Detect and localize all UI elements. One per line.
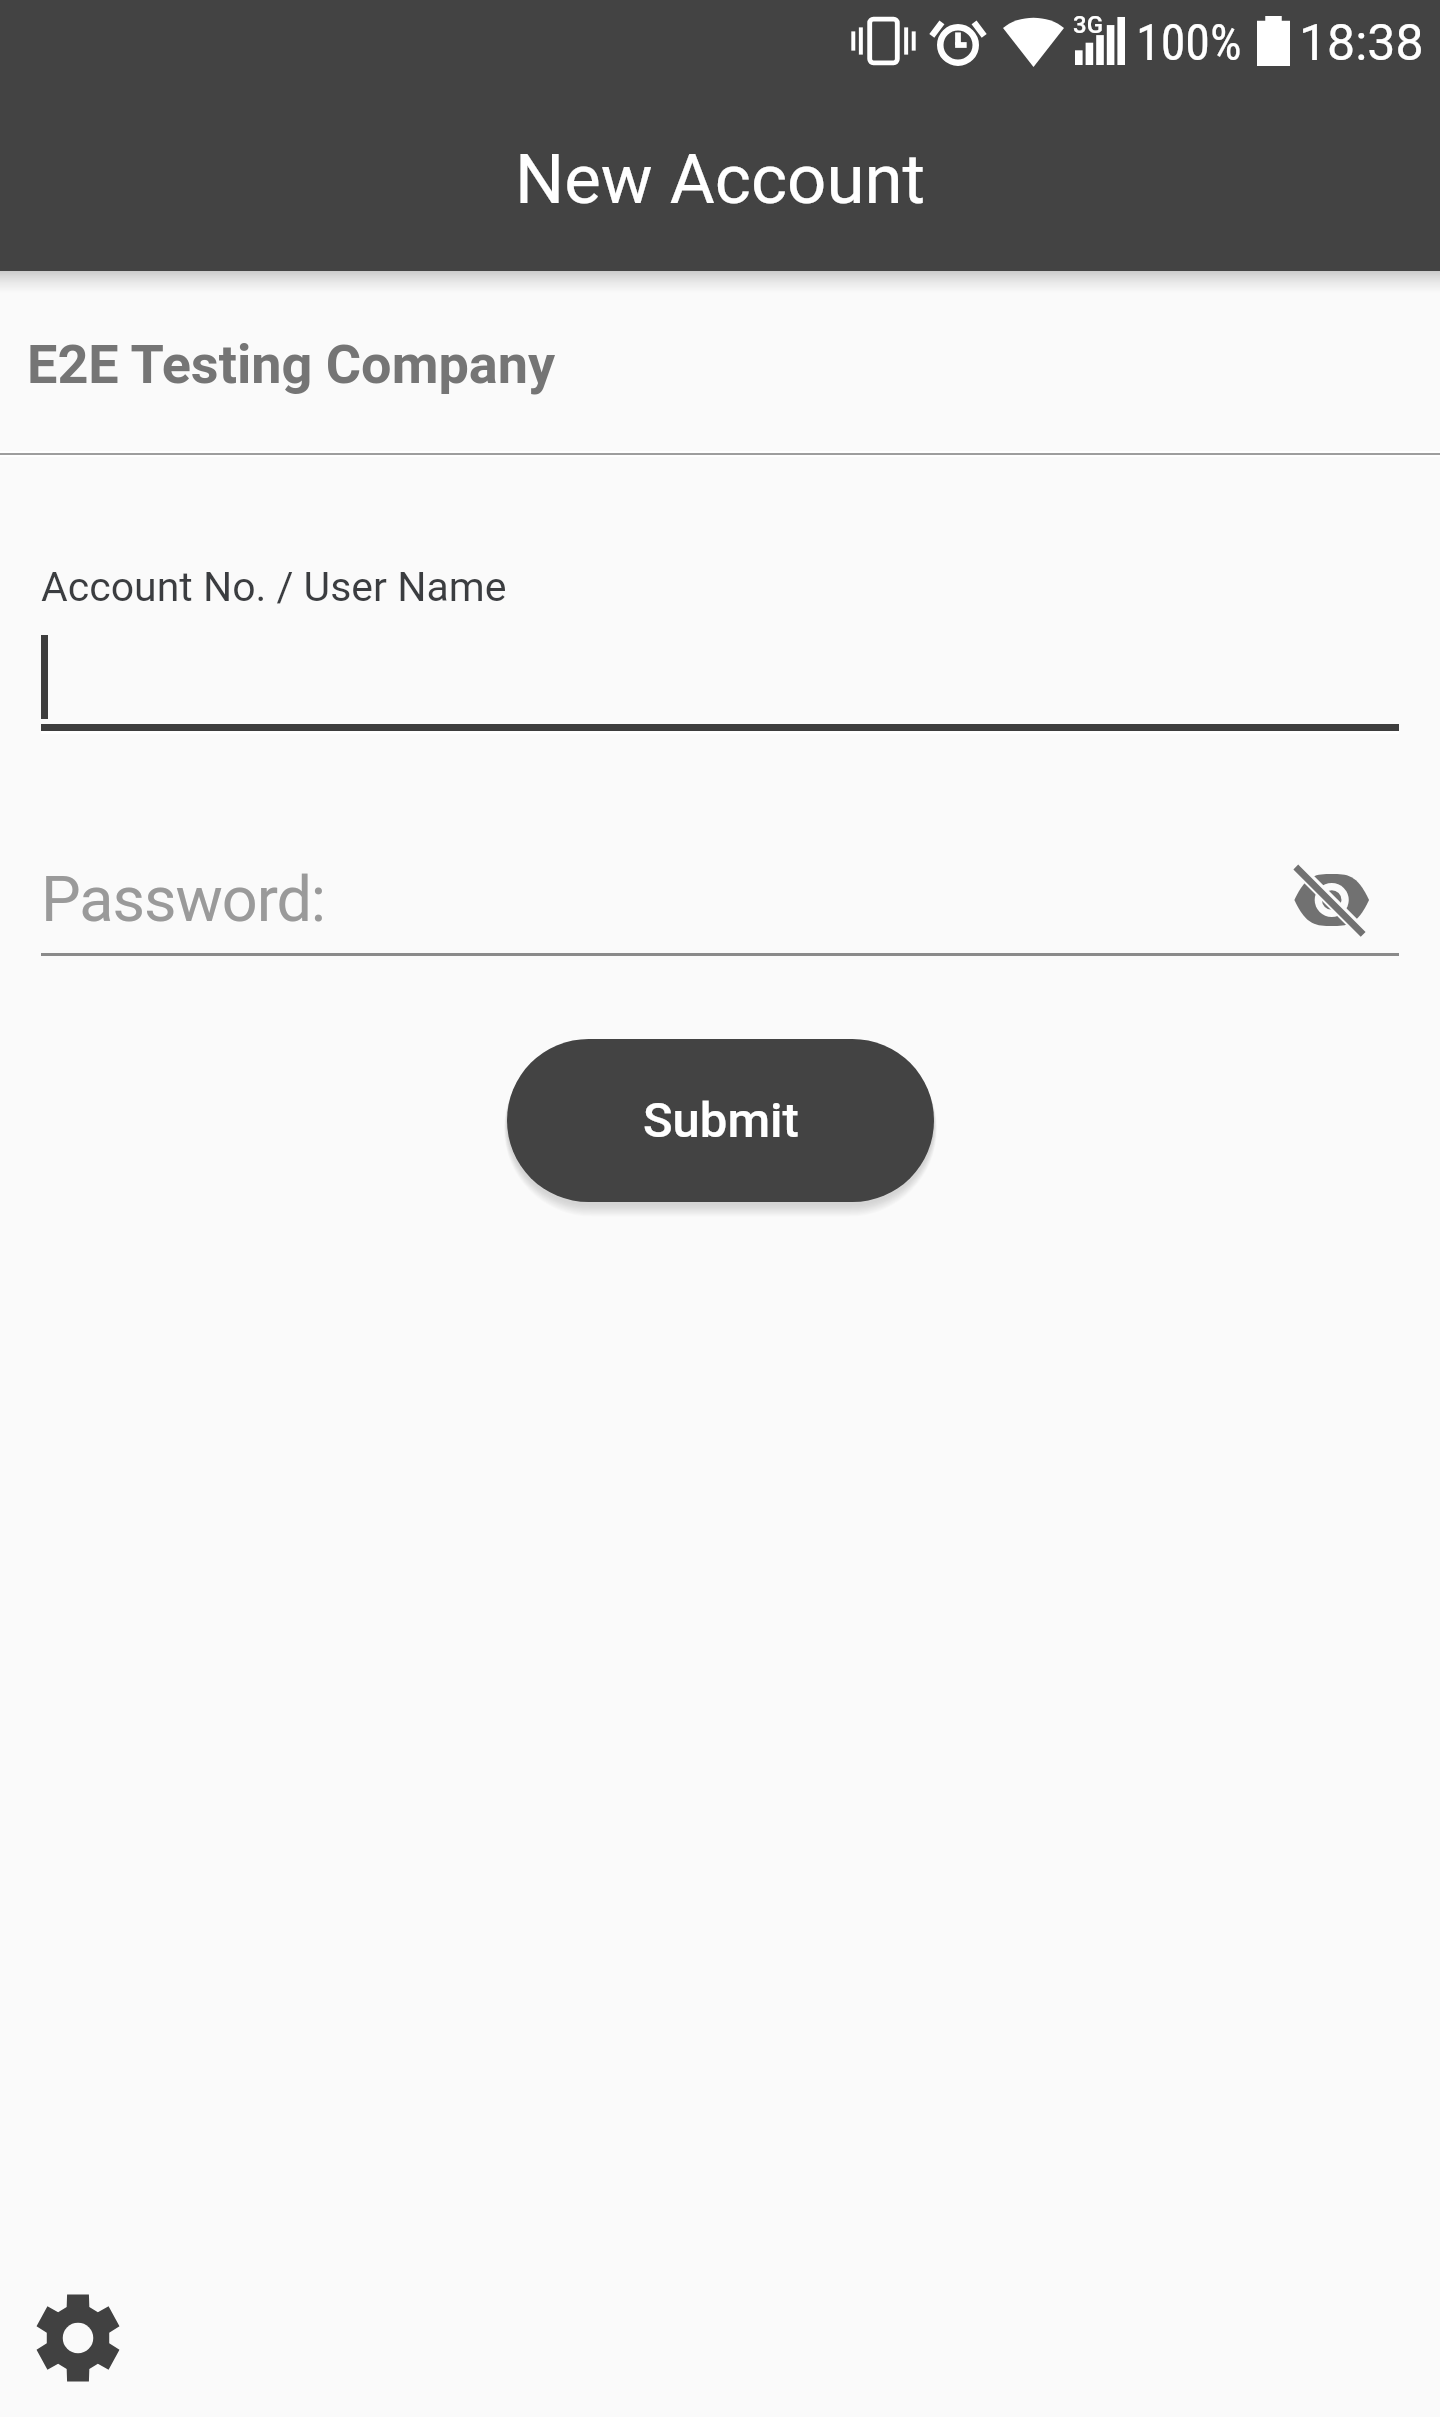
staticText: Account No. / User Name xyxy=(41,563,507,611)
staticText: 100% xyxy=(1136,14,1242,73)
staticText: 3G xyxy=(1073,11,1103,39)
staticText: New Account xyxy=(515,139,926,220)
button[interactable]: Settings xyxy=(35,2293,121,2383)
button[interactable]: Password: xyxy=(41,850,1273,956)
staticText: Password: xyxy=(41,863,326,937)
button[interactable]: Submit xyxy=(507,1039,934,1202)
button[interactable]: Show password xyxy=(1281,854,1381,946)
staticText: 18:38 xyxy=(1299,14,1424,73)
staticText: E2E Testing Company xyxy=(27,333,556,396)
staticText: Submit xyxy=(643,1092,799,1149)
button[interactable]: Account No. / User Name xyxy=(41,545,1399,735)
